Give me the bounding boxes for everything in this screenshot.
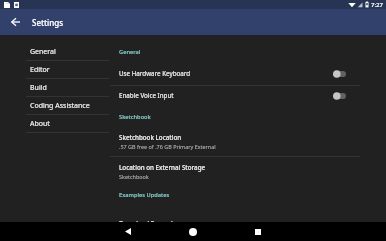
staticText: Download Examples — [119, 219, 180, 228]
staticText: Sketchbook — [119, 113, 151, 121]
staticText: General — [119, 48, 141, 56]
staticText: .57 GB free of .76 GB Primary External — [119, 143, 216, 150]
staticText: 7:27 — [371, 1, 383, 9]
staticText: General — [30, 47, 56, 57]
staticText: Build — [30, 83, 47, 93]
staticText: Coding Assistance — [30, 101, 90, 111]
button[interactable]: Sketchbook Location — [109, 127, 386, 156]
button[interactable]: Recents — [244, 222, 272, 241]
staticText: Settings — [32, 17, 64, 28]
staticText: Examples Updates — [119, 191, 170, 199]
button[interactable]: Use Hardware Keyboard — [109, 63, 386, 84]
button[interactable]: Location on External Storage — [109, 157, 386, 186]
staticText: Sketchbook — [119, 173, 149, 180]
button[interactable]: Back — [5, 12, 25, 32]
button[interactable]: Build — [0, 79, 109, 96]
staticText: Sketchbook Location — [119, 133, 182, 142]
staticText: Editor — [30, 65, 50, 75]
button[interactable]: Back — [114, 222, 142, 241]
button[interactable]: General — [0, 43, 109, 60]
staticText: Enable Voice Input — [119, 91, 174, 100]
staticText: Use Hardware Keyboard — [119, 69, 191, 78]
staticText: About — [30, 119, 50, 129]
button[interactable]: Enable Voice Input — [109, 85, 386, 106]
button[interactable]: About — [0, 115, 109, 132]
button[interactable]: Editor — [0, 61, 109, 78]
button[interactable]: Home — [179, 222, 207, 241]
button[interactable]: Coding Assistance — [0, 97, 109, 114]
staticText: Location on External Storage — [119, 163, 206, 172]
